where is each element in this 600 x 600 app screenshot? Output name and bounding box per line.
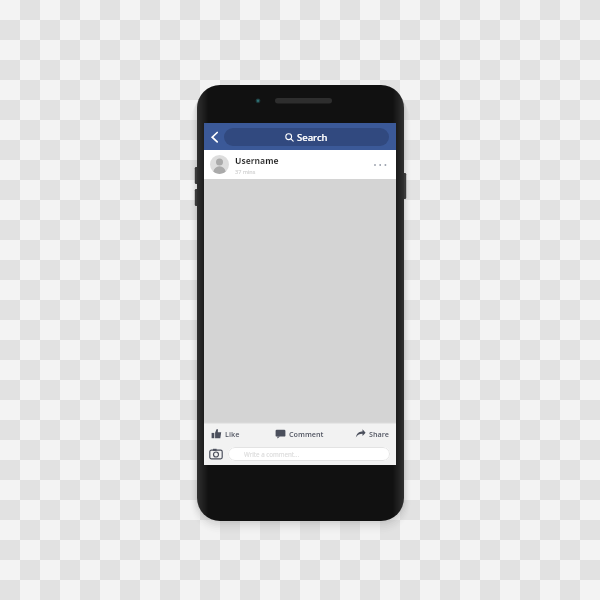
button[interactable]: Camera <box>209 447 223 461</box>
staticText: Username <box>235 155 279 167</box>
staticText: Like <box>225 429 240 439</box>
button[interactable]: Search <box>224 128 389 146</box>
button[interactable]: Like <box>209 426 242 441</box>
staticText: Write a comment... <box>244 450 300 458</box>
button[interactable]: More options <box>370 157 390 173</box>
staticText: Search <box>297 131 328 144</box>
staticText: Comment <box>289 429 324 439</box>
staticText: Share <box>369 429 389 439</box>
button[interactable]: Write a comment... <box>228 447 390 461</box>
button[interactable]: Share <box>353 426 391 441</box>
button[interactable]: Profile photo <box>210 155 229 174</box>
button[interactable]: Back <box>206 128 224 146</box>
button[interactable]: Comment <box>273 426 326 441</box>
staticText: 37 mins <box>235 168 256 175</box>
